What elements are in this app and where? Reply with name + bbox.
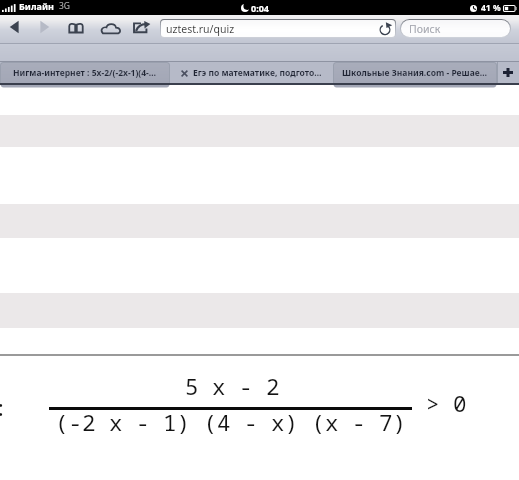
button[interactable]: New Tab bbox=[497, 62, 519, 83]
staticText: uztest.ru/quiz bbox=[166, 22, 235, 36]
button[interactable]: Back bbox=[9, 20, 22, 34]
staticText: Поиск bbox=[409, 22, 441, 36]
button[interactable]: Forward bbox=[37, 20, 50, 34]
button[interactable]: iCloud Tabs bbox=[101, 23, 120, 34]
button[interactable]: Поиск bbox=[400, 19, 511, 38]
staticText: 41 % bbox=[481, 2, 501, 14]
staticText: Школьные Знания.com - Решае… bbox=[342, 67, 487, 79]
staticText: Нигма-интернет : 5x-2/(-2x-1)(4-… bbox=[13, 67, 157, 79]
button[interactable]: Школьные Знания.com - Решае… bbox=[333, 62, 497, 83]
staticText: > 0 bbox=[426, 388, 467, 419]
staticText: 0:04 bbox=[251, 2, 269, 14]
staticText: 5 x - 2 bbox=[185, 371, 280, 402]
button[interactable]: Share bbox=[133, 21, 150, 33]
staticText: (-2 x - 1) (4 - x) (x - 7) bbox=[55, 407, 407, 438]
staticText: Билайн bbox=[19, 0, 54, 12]
button[interactable]: Нигма-интернет : 5x-2/(-2x-1)(4-… bbox=[0, 62, 170, 83]
staticText: Егэ по математике, подгото… bbox=[193, 67, 322, 79]
button[interactable]: Bookmarks bbox=[68, 23, 84, 33]
staticText: : bbox=[0, 392, 8, 423]
button[interactable]: Егэ по математике, подгото… bbox=[170, 62, 333, 83]
staticText: 3G bbox=[59, 0, 71, 12]
button[interactable]: uztest.ru/quiz bbox=[160, 19, 396, 38]
